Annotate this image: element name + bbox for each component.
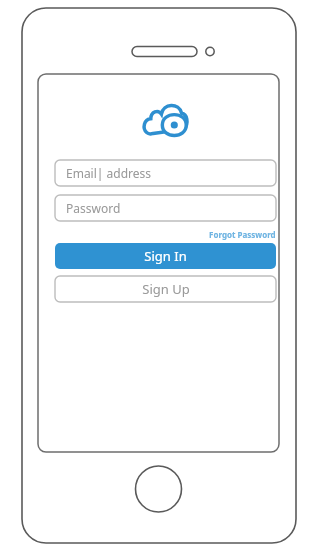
button[interactable]: Sign Up (55, 276, 276, 302)
button[interactable]: Forgot Password (55, 228, 276, 240)
staticText: Sign Up (142, 280, 190, 298)
staticText: Sign In (144, 247, 187, 265)
staticText: Password (66, 200, 121, 216)
staticText: Email| address (66, 165, 152, 181)
button[interactable]: Email| address (55, 160, 276, 186)
staticText: Forgot Password (209, 229, 276, 240)
button[interactable]: Password (55, 195, 276, 221)
button[interactable]: Sign In (55, 243, 276, 269)
